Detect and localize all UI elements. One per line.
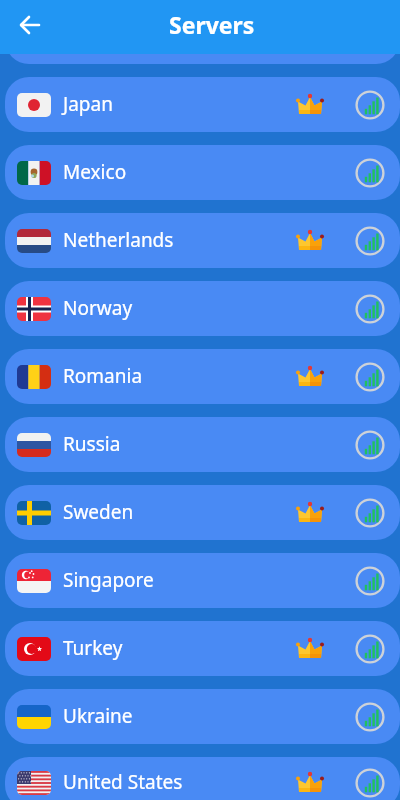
button[interactable] <box>8 5 52 49</box>
staticText: Russia <box>63 431 121 457</box>
staticText: Netherlands <box>63 227 174 253</box>
staticText: Singapore <box>63 567 154 593</box>
button[interactable]: Italy <box>5 9 400 64</box>
staticText: United States <box>63 769 183 795</box>
button[interactable]: Turkey <box>5 621 400 676</box>
button[interactable]: Netherlands <box>5 213 400 268</box>
button[interactable]: Russia <box>5 417 400 472</box>
button[interactable]: United States <box>5 757 400 800</box>
staticText: Mexico <box>63 159 127 185</box>
button[interactable]: Norway <box>5 281 400 336</box>
button[interactable]: Mexico <box>5 145 400 200</box>
button[interactable]: Sweden <box>5 485 400 540</box>
button[interactable]: Romania <box>5 349 400 404</box>
staticText: Norway <box>63 295 133 321</box>
staticText: Ukraine <box>63 703 133 729</box>
button[interactable]: Ukraine <box>5 689 400 744</box>
button[interactable]: Japan <box>5 77 400 132</box>
staticText: Turkey <box>63 635 123 661</box>
staticText: Japan <box>63 91 113 117</box>
staticText: Romania <box>63 363 143 389</box>
staticText: Sweden <box>63 499 134 525</box>
button[interactable]: Singapore <box>5 553 400 608</box>
staticText: Servers <box>169 9 255 40</box>
